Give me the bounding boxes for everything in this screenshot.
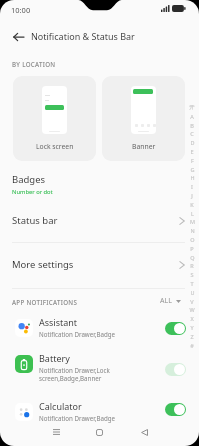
button[interactable]: Lock screen xyxy=(13,76,96,161)
staticText: Notification & Status Bar xyxy=(31,30,135,42)
staticText: N xyxy=(190,227,195,234)
staticText: V xyxy=(190,298,194,305)
button[interactable]: Toggle notifications xyxy=(165,403,186,416)
staticText: screen,Badge,Banner xyxy=(39,374,102,382)
staticText: Notification Drawer,Badge xyxy=(39,330,116,338)
staticText: R xyxy=(190,262,194,269)
button[interactable]: Home xyxy=(85,421,113,443)
staticText: More settings xyxy=(12,258,74,271)
staticText: Number or dot xyxy=(12,188,53,196)
staticText: S xyxy=(190,271,194,278)
staticText: J xyxy=(191,192,193,199)
button[interactable]: Banner xyxy=(102,76,185,161)
staticText: T xyxy=(190,280,194,287)
staticText: D xyxy=(190,139,195,146)
button[interactable]: Status bar xyxy=(0,208,199,233)
staticText: A xyxy=(190,113,194,120)
staticText: K xyxy=(190,201,194,208)
button[interactable]: Badges xyxy=(0,168,199,200)
staticText: H xyxy=(190,174,195,181)
staticText: Banner xyxy=(132,142,156,151)
staticText: Calculator xyxy=(39,400,82,412)
staticText: Q xyxy=(190,254,195,261)
staticText: ALL xyxy=(160,296,172,306)
staticText: G xyxy=(190,166,195,173)
staticText: I xyxy=(191,183,193,190)
staticText: BY LOCATION xyxy=(12,60,56,68)
staticText: APP NOTIFICATIONS xyxy=(12,298,78,306)
button[interactable]: Recents xyxy=(42,421,70,443)
button[interactable]: Calculator xyxy=(0,397,199,433)
staticText: O xyxy=(190,236,195,243)
button[interactable]: Toggle notifications xyxy=(165,363,186,376)
staticText: W xyxy=(189,306,195,313)
staticText: Battery xyxy=(39,352,70,364)
staticText: 10:00 xyxy=(11,5,31,15)
staticText: L xyxy=(191,210,194,217)
staticText: Lock screen xyxy=(36,142,74,151)
staticText: Z xyxy=(190,333,194,340)
staticText: E xyxy=(190,148,194,155)
button[interactable]: More settings xyxy=(0,252,199,277)
staticText: Notification Drawer,Lock xyxy=(39,366,110,374)
staticText: M xyxy=(190,218,195,225)
staticText: F xyxy=(191,157,194,164)
staticText: # xyxy=(190,342,194,349)
button[interactable]: Battery xyxy=(0,349,199,397)
button[interactable]: Back xyxy=(130,421,158,443)
staticText: U xyxy=(190,289,195,296)
staticText: Y xyxy=(190,324,194,331)
staticText: 开 xyxy=(189,104,195,111)
staticText: Badges xyxy=(12,173,46,186)
staticText: Assistant xyxy=(39,316,78,328)
button[interactable]: Assistant xyxy=(0,313,199,349)
button[interactable]: ALL xyxy=(160,296,181,306)
staticText: P xyxy=(190,245,194,252)
button[interactable]: Toggle notifications xyxy=(165,322,186,335)
staticText: X xyxy=(190,315,194,322)
staticText: C xyxy=(190,130,194,137)
button[interactable]: Alphabet index xyxy=(186,104,198,354)
staticText: B xyxy=(190,122,194,129)
button[interactable]: Back xyxy=(6,25,30,49)
staticText: Notification Drawer,Badge xyxy=(39,414,116,422)
staticText: Status bar xyxy=(12,214,58,227)
